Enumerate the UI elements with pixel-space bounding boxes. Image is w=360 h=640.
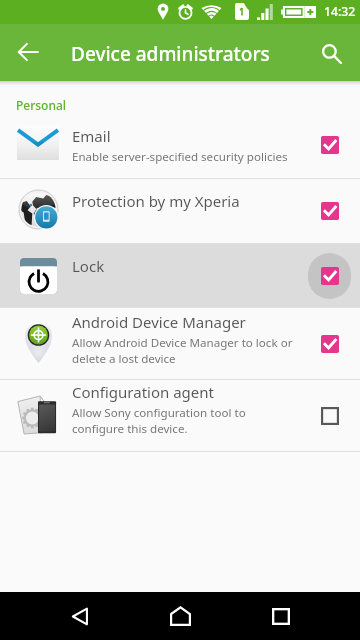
staticText: Personal xyxy=(16,97,67,113)
staticText: Protection by my Xperia xyxy=(72,191,240,211)
staticText: Android Device Manager xyxy=(72,312,246,332)
button[interactable]: Configuration agent xyxy=(0,380,360,451)
button[interactable]: Protection by my Xperia xyxy=(0,179,360,243)
button[interactable]: Toggle Android Device Manager xyxy=(312,326,348,362)
button[interactable]: Back xyxy=(56,592,104,640)
button[interactable]: Email xyxy=(0,112,360,178)
staticText: Allow Sony configuration tool to configu… xyxy=(72,405,246,437)
button[interactable]: Toggle Lock xyxy=(312,258,348,294)
button[interactable]: Back xyxy=(4,28,52,76)
staticText: Configuration agent xyxy=(72,382,214,402)
staticText: Allow Android Device Manager to lock or … xyxy=(72,335,293,367)
button[interactable]: Android Device Manager xyxy=(0,308,360,379)
staticText: 14:32 xyxy=(324,3,356,20)
button[interactable]: Search xyxy=(307,29,355,77)
button[interactable]: Toggle Configuration agent xyxy=(312,398,348,434)
button[interactable]: Recent apps xyxy=(257,592,305,640)
staticText: Lock xyxy=(72,256,105,276)
button[interactable]: Lock xyxy=(0,244,360,307)
staticText: Email xyxy=(72,126,111,146)
staticText: Enable server-specified security policie… xyxy=(72,149,288,165)
button[interactable]: Toggle Protection by my Xperia xyxy=(312,193,348,229)
staticText: Device administrators xyxy=(71,41,270,67)
button[interactable]: Toggle Email xyxy=(312,127,348,163)
button[interactable]: Home xyxy=(156,592,204,640)
